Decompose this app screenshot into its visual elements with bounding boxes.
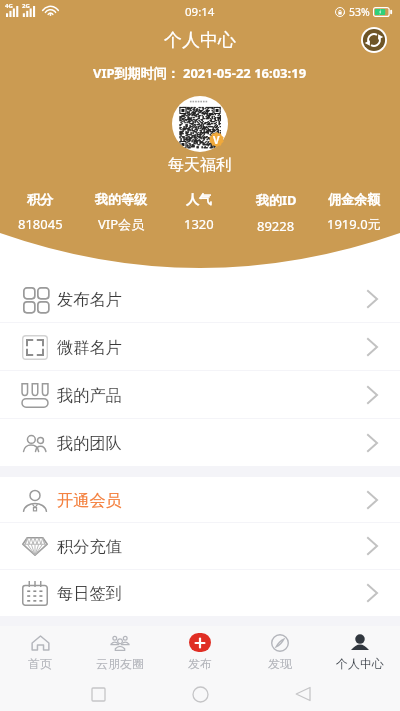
- staticText: 发布名片: [57, 289, 122, 309]
- button[interactable]: 我的团队: [0, 419, 400, 467]
- button[interactable]: Recents: [91, 687, 106, 702]
- staticText: 积分: [27, 191, 53, 207]
- button[interactable]: 首页: [0, 626, 80, 677]
- staticText: 1320: [184, 215, 214, 233]
- staticText: 人气: [186, 191, 212, 207]
- staticText: VIP会员: [98, 215, 145, 233]
- staticText: 我的团队: [57, 433, 122, 453]
- staticText: 积分充值: [57, 536, 122, 556]
- staticText: 微群名片: [57, 337, 122, 357]
- staticText: 09:14: [185, 4, 215, 20]
- staticText: V: [213, 133, 220, 147]
- staticText: 个人中心: [164, 29, 236, 52]
- staticText: 4G: [5, 2, 13, 10]
- staticText: 89228: [257, 217, 295, 235]
- staticText: 首页: [28, 656, 52, 671]
- staticText: 发布: [188, 656, 212, 671]
- button[interactable]: 发布: [160, 626, 240, 677]
- button[interactable]: 每日签到: [0, 570, 400, 617]
- button[interactable]: 发布名片: [0, 275, 400, 323]
- button[interactable]: 微群名片: [0, 323, 400, 371]
- staticText: 发现: [268, 656, 292, 671]
- button[interactable]: 个人中心: [320, 626, 400, 677]
- staticText: 个人中心: [336, 656, 384, 671]
- staticText: 2G: [22, 2, 30, 10]
- staticText: 开通会员: [57, 490, 122, 510]
- button[interactable]: Refresh: [360, 26, 387, 53]
- staticText: 我的ID: [256, 191, 297, 209]
- staticText: 我的等级: [95, 191, 147, 207]
- button[interactable]: 积分充值: [0, 523, 400, 570]
- staticText: 云朋友圈: [96, 656, 144, 671]
- button[interactable]: 开通会员: [0, 477, 400, 523]
- staticText: 每日签到: [57, 583, 122, 603]
- staticText: 818045: [18, 215, 63, 233]
- staticText: 1919.0元: [327, 215, 381, 233]
- staticText: 53%: [349, 5, 370, 19]
- button[interactable]: 我的产品: [0, 371, 400, 419]
- staticText: VIP到期时间： 2021-05-22 16:03:19: [93, 64, 307, 82]
- staticText: 每天福利: [168, 155, 232, 175]
- button[interactable]: Home: [192, 686, 209, 703]
- button[interactable]: Back: [295, 686, 311, 702]
- staticText: 佣金余额: [328, 191, 380, 207]
- button[interactable]: 云朋友圈: [80, 626, 160, 677]
- staticText: 我的产品: [57, 385, 122, 405]
- button[interactable]: 发现: [240, 626, 320, 677]
